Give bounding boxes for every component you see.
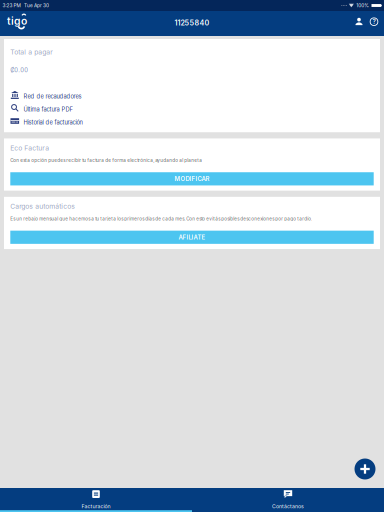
- button[interactable]: Agregar: [352, 456, 378, 482]
- button[interactable]: Contáctanos: [192, 488, 384, 512]
- button[interactable]: Cuenta: [351, 11, 366, 36]
- staticText: Cargos automáticos: [10, 202, 75, 210]
- button[interactable]: Red de recaudadores: [4, 90, 380, 103]
- staticText: Última factura PDF: [23, 106, 72, 113]
- staticText: Eco Factura: [10, 144, 49, 152]
- staticText: ₡0.00: [10, 67, 28, 74]
- button[interactable]: AFILIATE: [10, 231, 374, 244]
- staticText: 3:23 PM: [3, 3, 21, 8]
- staticText: Total a pagar: [10, 48, 53, 56]
- staticText: Facturación: [81, 503, 110, 509]
- staticText: AFILIATE: [178, 234, 205, 241]
- staticText: Con esta opción puedes recibir tu factur…: [10, 158, 202, 163]
- button[interactable]: Última factura PDF: [4, 103, 380, 116]
- staticText: MODIFICAR: [174, 175, 209, 182]
- button[interactable]: MODIFICAR: [10, 172, 374, 185]
- staticText: Contáctanos: [272, 503, 304, 509]
- staticText: Historial de facturación: [23, 119, 82, 126]
- staticText: Red de recaudadores: [23, 93, 81, 100]
- button[interactable]: Ayuda: [366, 11, 381, 36]
- button[interactable]: Facturación: [0, 488, 192, 512]
- staticText: tigo: [7, 15, 27, 27]
- staticText: Es un rebajo mensual que hacemos a tu ta…: [10, 216, 312, 222]
- button[interactable]: Historial de facturación: [4, 116, 380, 129]
- staticText: 11255840: [174, 19, 209, 27]
- staticText: 100%: [356, 3, 369, 8]
- staticText: ?: [372, 18, 375, 25]
- staticText: Tue Apr 30: [24, 3, 49, 8]
